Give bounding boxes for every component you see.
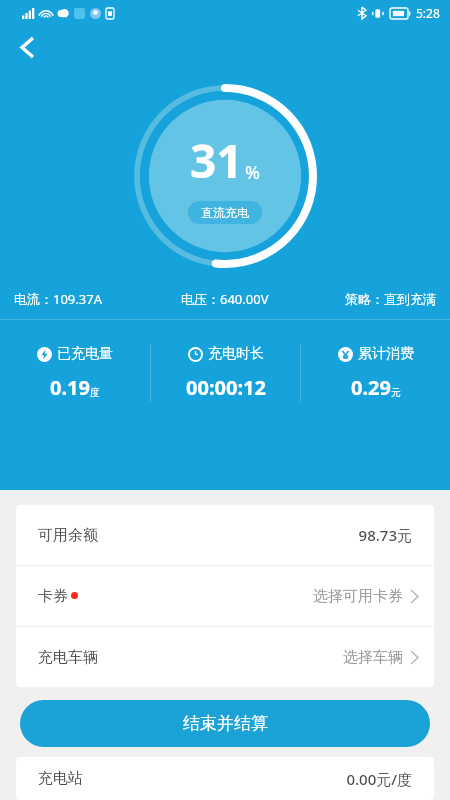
staticText: 电压：640.00V — [181, 290, 269, 308]
staticText: 充电站 — [38, 769, 83, 788]
staticText: 0.29 — [351, 374, 391, 401]
staticText: 度 — [90, 386, 100, 399]
staticText: 00:00:12 — [186, 374, 266, 401]
staticText: 元 — [391, 386, 401, 399]
staticText: 直流充电 — [201, 205, 249, 220]
staticText: 策略：直到充满 — [345, 291, 436, 307]
staticText: 选择车辆 — [343, 648, 403, 667]
staticText: 可用余额 — [38, 526, 98, 545]
button[interactable]: 卡券 — [16, 566, 434, 626]
staticText: 充电时长 — [208, 345, 264, 363]
staticText: 结束并结算 — [183, 713, 268, 734]
staticText: 累计消费 — [358, 345, 414, 363]
staticText: 0.19 — [50, 374, 90, 401]
staticText: 选择可用卡券 — [313, 587, 403, 606]
staticText: 已充电量 — [57, 345, 113, 363]
button[interactable]: 充电车辆 — [16, 627, 434, 687]
button[interactable]: 充电站 — [16, 757, 434, 800]
button[interactable]: Back — [6, 26, 48, 68]
staticText: 卡券 — [38, 587, 68, 606]
staticText: 充电车辆 — [38, 648, 98, 667]
staticText: 98.73元 — [358, 525, 412, 545]
staticText: 31 — [190, 129, 243, 192]
button[interactable]: 结束并结算 — [20, 700, 430, 747]
staticText: 5:28 — [416, 5, 440, 21]
staticText: 电流：109.37A — [14, 290, 102, 308]
button[interactable]: 可用余额 — [16, 505, 434, 565]
staticText: % — [245, 160, 260, 185]
staticText: 0.00元/度 — [346, 769, 412, 789]
